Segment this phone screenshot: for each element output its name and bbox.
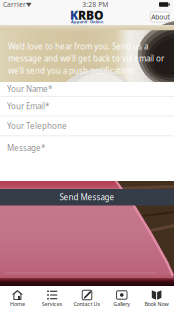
staticText: Gallery [113, 300, 130, 308]
staticText: message and we'll get back to via email … [8, 53, 164, 64]
staticText: Contact Us [73, 300, 100, 308]
staticText: Apparel [71, 19, 87, 24]
staticText: Services [42, 300, 63, 308]
staticText: Book Now [145, 300, 169, 308]
staticText: we'll send you a push notification! [8, 65, 135, 76]
staticText: We'd love to hear from you. Send us a [8, 41, 148, 52]
button[interactable]: About [151, 12, 170, 22]
staticText: • [87, 19, 89, 24]
staticText: Online [90, 19, 103, 24]
staticText: Send Message [59, 192, 114, 202]
staticText: Your Telephone [7, 121, 67, 131]
staticText: About [151, 13, 169, 21]
button[interactable]: Home [0, 286, 35, 310]
button[interactable]: Book Now [139, 286, 174, 310]
staticText: Home [10, 300, 25, 308]
staticText: Your Email* [7, 101, 49, 111]
staticText: K [70, 7, 78, 23]
button[interactable]: Gallery [104, 286, 139, 310]
staticText: RBO [78, 7, 104, 23]
button[interactable]: Contact Us [70, 286, 104, 310]
staticText: Message* [7, 143, 45, 153]
staticText: 3:28 PM [82, 0, 108, 9]
staticText: Your Name* [7, 84, 52, 94]
staticText: Carrier [3, 0, 26, 9]
button[interactable]: Services [35, 286, 70, 310]
